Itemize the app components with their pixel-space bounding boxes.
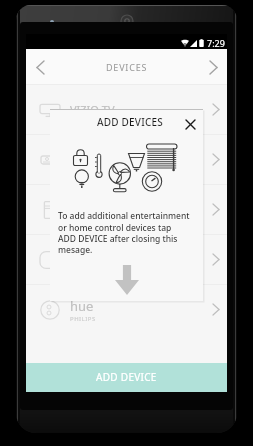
staticText: NEST xyxy=(70,152,97,167)
button[interactable]: Roku xyxy=(26,235,227,284)
staticText: ADD DEVICES xyxy=(97,115,163,129)
staticText: ADD DEVICE xyxy=(96,370,157,384)
staticText: hue xyxy=(70,297,94,315)
button[interactable]: VIZIO TV xyxy=(26,85,227,134)
button[interactable]: Next xyxy=(199,49,227,85)
staticText: Roku xyxy=(70,252,97,267)
staticText: 7:29 xyxy=(207,37,225,49)
button[interactable]: hue xyxy=(26,285,227,334)
staticText: VIZIO TV xyxy=(70,102,115,117)
staticText: SONOS xyxy=(70,202,108,217)
staticText: PHILIPS xyxy=(70,315,96,323)
button[interactable]: Previous xyxy=(26,49,54,85)
staticText: To add additional entertainment or home … xyxy=(58,210,190,255)
button[interactable]: Close xyxy=(182,116,198,132)
staticText: DEVICES xyxy=(106,61,148,73)
button[interactable]: ADD DEVICE xyxy=(26,363,227,392)
button[interactable]: NEST xyxy=(26,135,227,184)
button[interactable]: SONOS xyxy=(26,185,227,234)
